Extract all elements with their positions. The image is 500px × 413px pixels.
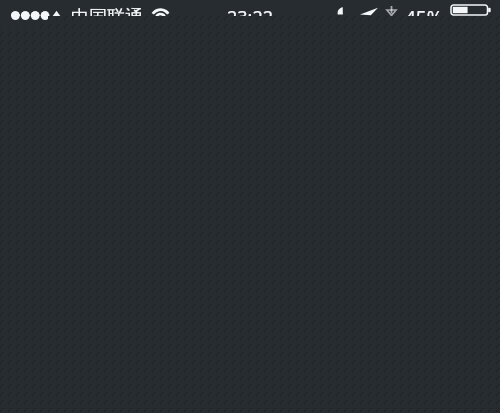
staticText: 45% [405,5,443,16]
other: Battery 45 percent [451,5,493,16]
staticText: 中国联通 [71,6,143,16]
other: Mobile signal strength [10,10,48,21]
button[interactable]: Status bar, open notification shade [0,0,500,16]
other: Location in use [360,5,378,16]
staticText: 23:22 [227,5,274,16]
other: Alarm set [337,5,343,16]
other: Downloading [386,5,397,16]
other: Wi-Fi connected [151,8,170,16]
